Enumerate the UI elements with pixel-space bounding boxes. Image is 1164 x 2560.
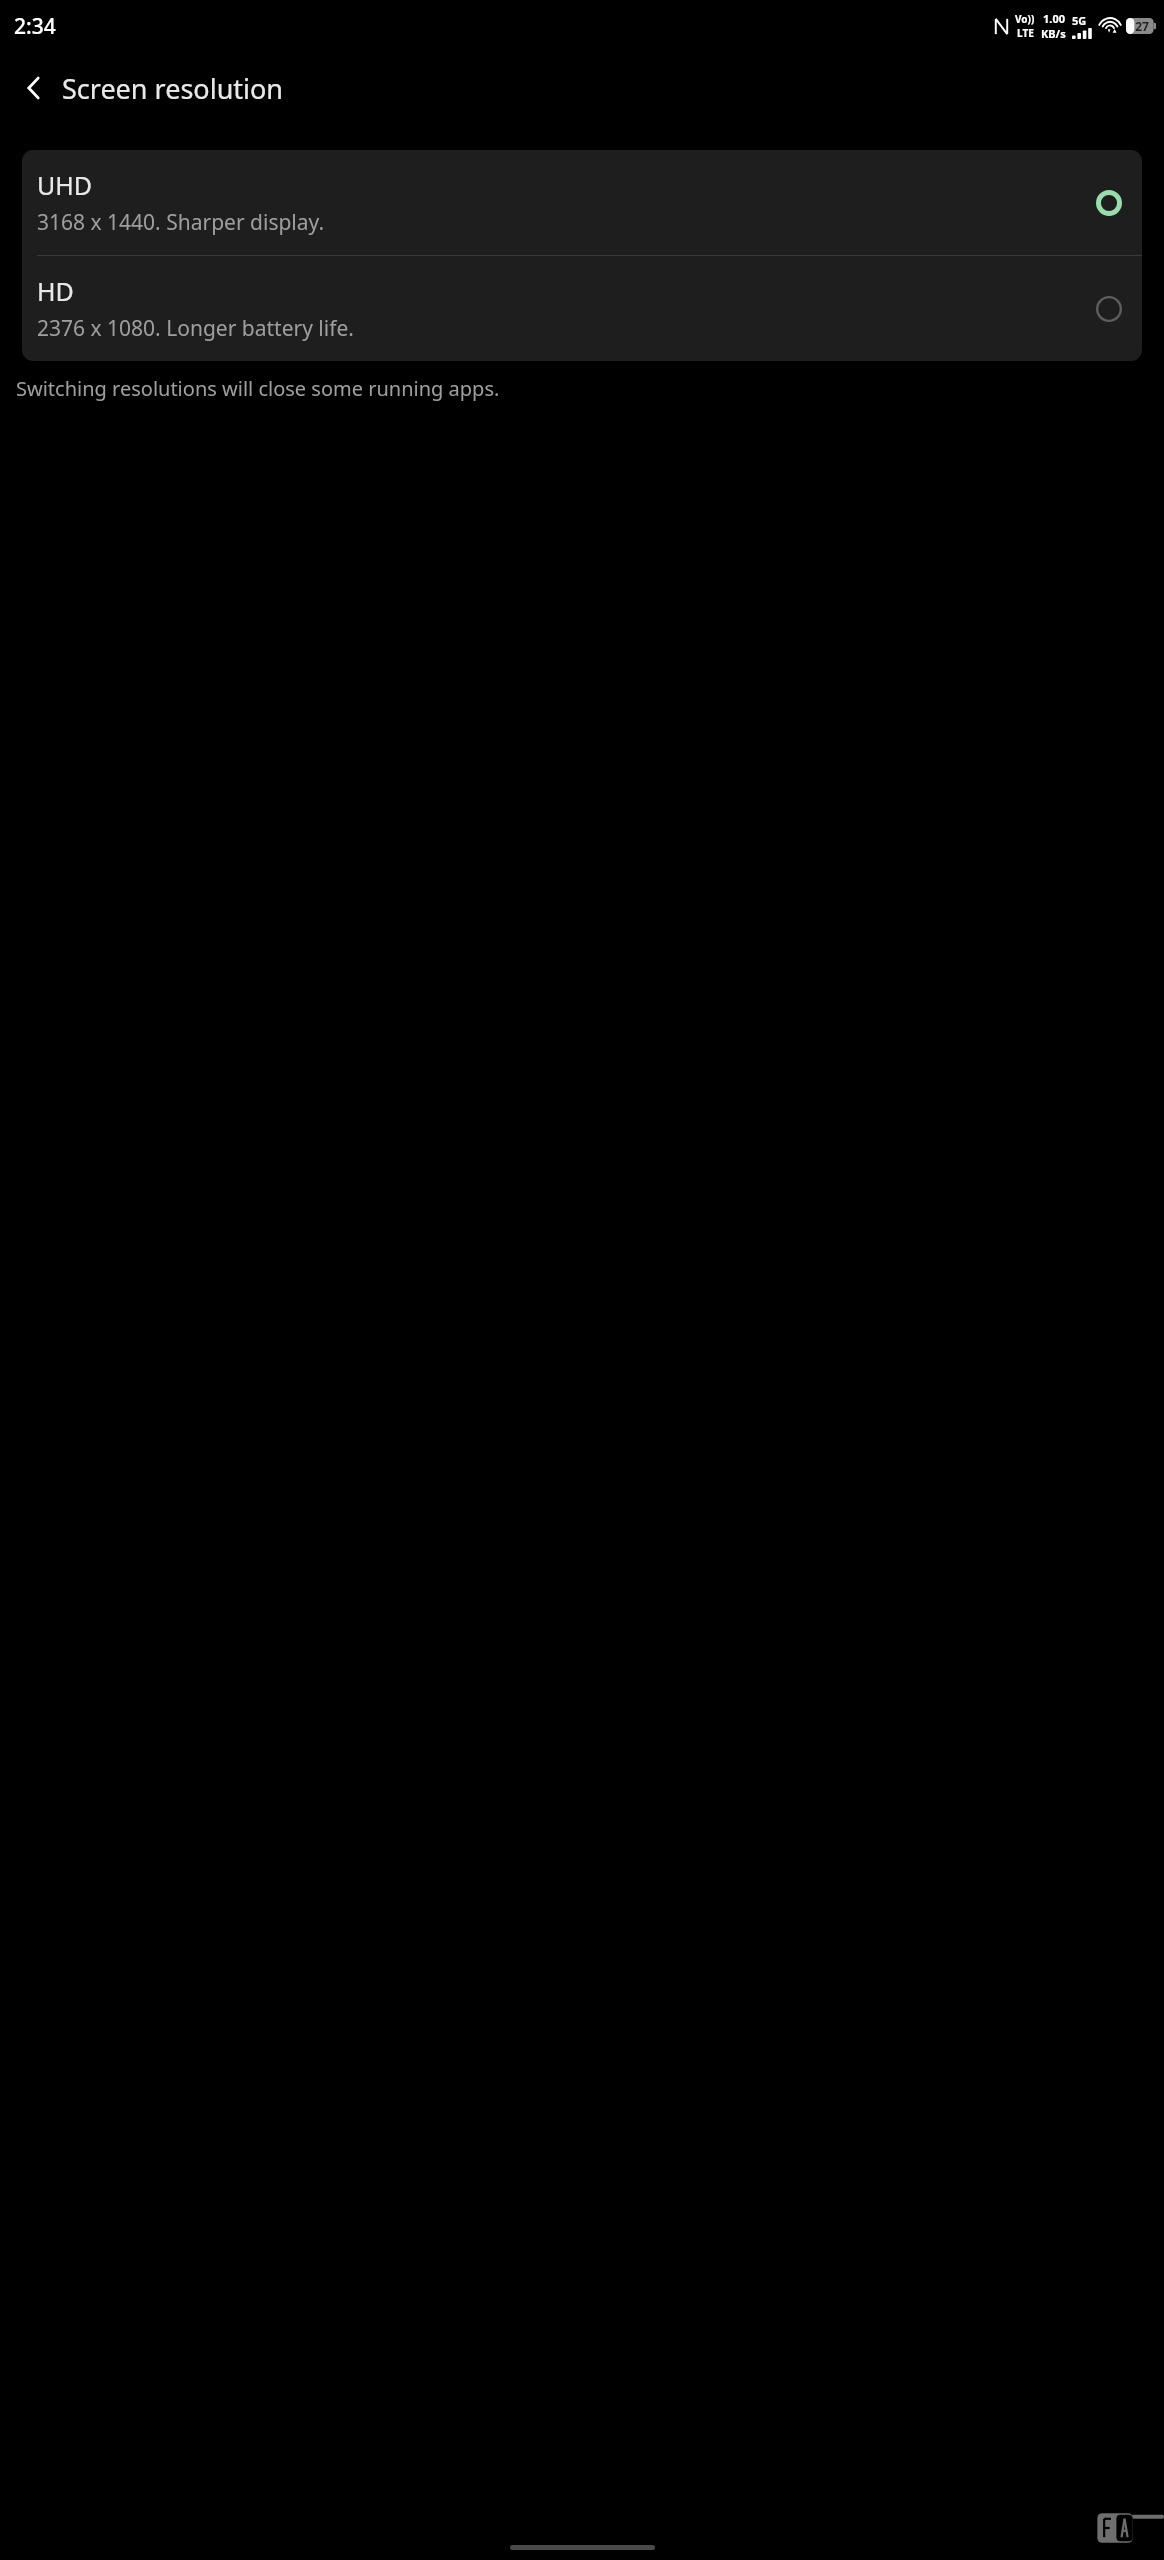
button[interactable]: UHD xyxy=(22,150,1142,255)
other: Font size accessibility control xyxy=(1096,2506,1164,2546)
staticText: 5G xyxy=(1072,13,1087,28)
button[interactable]: Back xyxy=(10,64,58,112)
staticText: KB/s xyxy=(1041,26,1066,41)
staticText: Screen resolution xyxy=(62,70,284,107)
button[interactable]: HD xyxy=(22,256,1142,361)
staticText: 27 xyxy=(1135,18,1149,34)
staticText: 2376 x 1080. Longer battery life. xyxy=(37,314,354,343)
staticText: UHD xyxy=(37,168,93,202)
staticText: Vo)) xyxy=(1015,12,1035,26)
staticText: 1.00 xyxy=(1043,11,1065,26)
staticText: HD xyxy=(37,274,74,308)
staticText: 2:34 xyxy=(14,12,56,41)
staticText: 3168 x 1440. Sharper display. xyxy=(37,208,325,237)
staticText: LTE xyxy=(1017,26,1034,40)
staticText: Switching resolutions will close some ru… xyxy=(16,375,500,402)
